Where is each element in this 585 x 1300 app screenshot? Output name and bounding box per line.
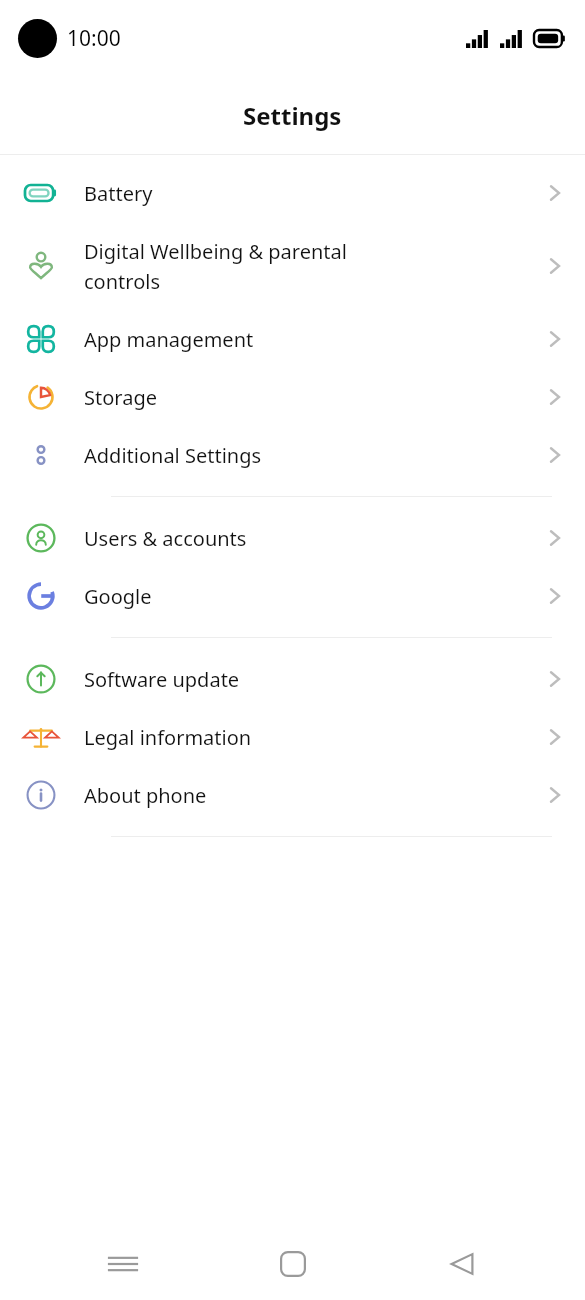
button[interactable]: App management (0, 310, 585, 368)
button[interactable]: Legal information (0, 708, 585, 766)
button[interactable]: Battery (0, 164, 585, 222)
staticText: 10:00 (67, 24, 121, 53)
button[interactable]: About phone (0, 766, 585, 824)
staticText: Users & accounts (84, 525, 537, 552)
staticText: About phone (84, 782, 537, 809)
staticText: Google (84, 583, 537, 610)
staticText: App management (84, 326, 537, 353)
button[interactable]: Storage (0, 368, 585, 426)
button[interactable]: Recent apps (77, 1228, 169, 1300)
button[interactable]: Software update (0, 650, 585, 708)
button[interactable]: Users & accounts (0, 509, 585, 567)
button[interactable]: Additional Settings (0, 426, 585, 484)
button[interactable]: Home (247, 1228, 339, 1300)
button[interactable]: Back (416, 1228, 508, 1300)
staticText: Battery (84, 180, 537, 207)
staticText: Storage (84, 384, 537, 411)
staticText: Settings (243, 99, 342, 132)
staticText: Digital Wellbeing & parental controls (84, 238, 537, 295)
button[interactable]: Digital Wellbeing & parental controls (0, 222, 585, 310)
staticText: Additional Settings (84, 442, 537, 469)
button[interactable]: Google (0, 567, 585, 625)
staticText: Legal information (84, 724, 537, 751)
staticText: Software update (84, 666, 537, 693)
